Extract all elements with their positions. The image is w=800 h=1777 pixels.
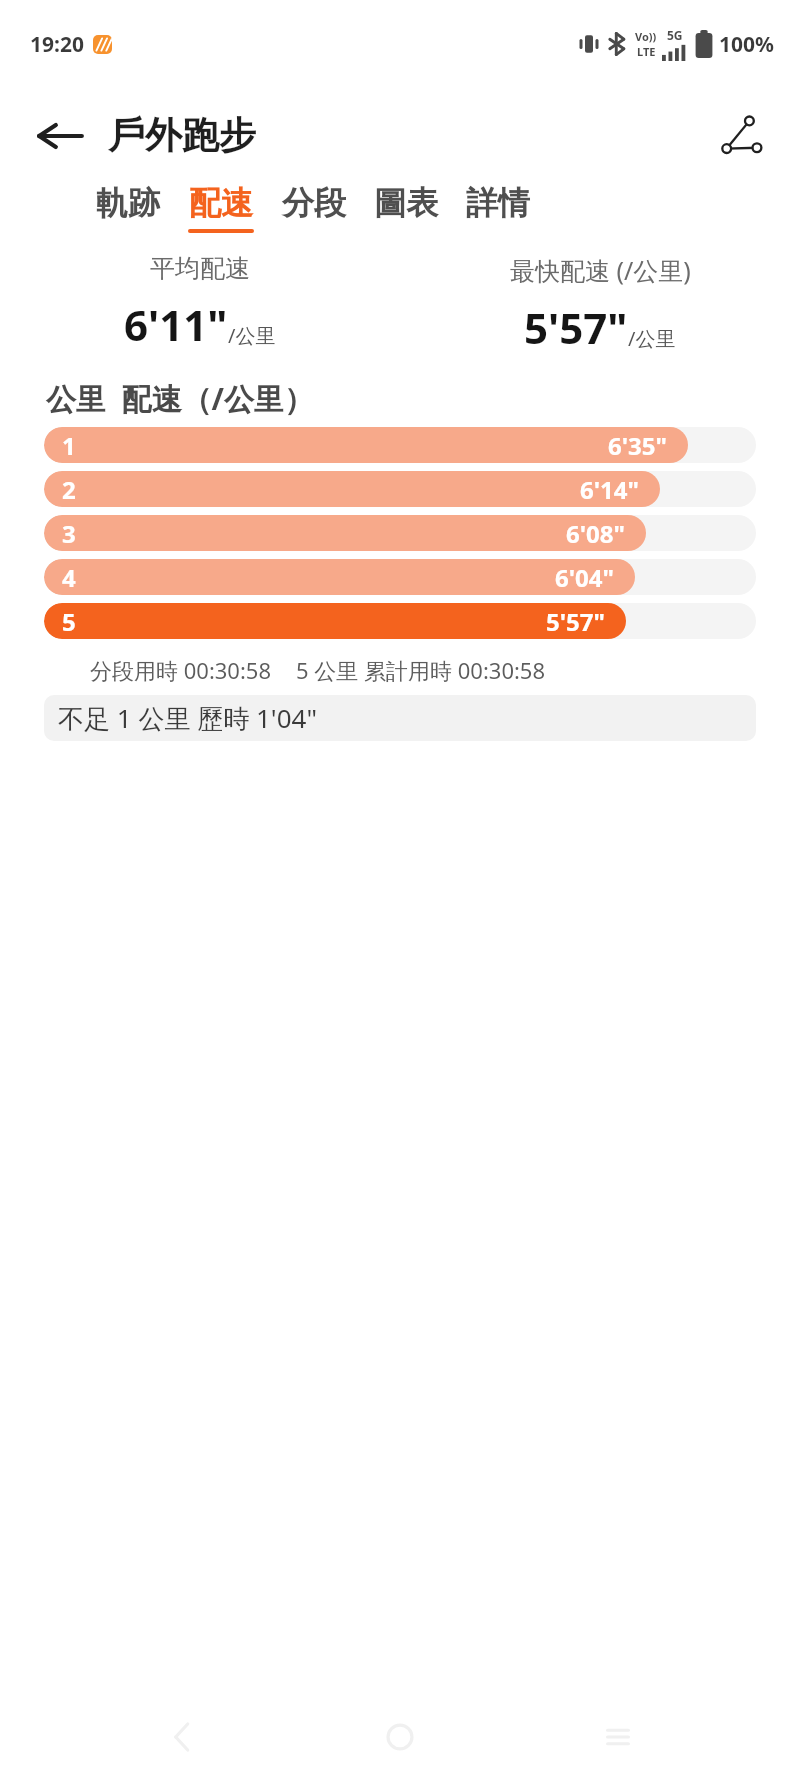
staticText: 詳情 xyxy=(466,183,530,223)
staticText: 100% xyxy=(719,30,774,59)
staticText: 5'57" xyxy=(524,299,628,356)
staticText: 1 xyxy=(62,429,76,462)
staticText: 最快配速 (/公里) xyxy=(510,253,691,287)
staticText: 不足 1 公里 歷時 1'04" xyxy=(58,700,317,736)
staticText: 6'35" xyxy=(608,429,668,462)
staticText: 戶外跑步 xyxy=(108,112,256,159)
button[interactable]: 配速 xyxy=(188,183,254,233)
button[interactable]: 5 xyxy=(44,603,756,639)
button[interactable]: 軌跡 xyxy=(96,183,160,233)
staticText: 分段 xyxy=(282,183,346,223)
staticText: 公里 配速（/公里） xyxy=(46,378,315,419)
button[interactable]: 3 xyxy=(44,515,756,551)
staticText: 6'14" xyxy=(580,473,640,506)
button[interactable]: Share xyxy=(710,105,772,167)
staticText: 6'11" xyxy=(124,296,228,353)
staticText: 5 公里 累計用時 00:30:58 xyxy=(296,655,546,685)
staticText: 分段用時 00:30:58 xyxy=(90,655,272,685)
staticText: 19:20 xyxy=(30,30,84,59)
button[interactable]: Back xyxy=(34,110,86,162)
button[interactable]: 4 xyxy=(44,559,756,595)
button[interactable]: 2 xyxy=(44,471,756,507)
staticText: Vo)) xyxy=(635,29,657,44)
staticText: /公里 xyxy=(228,322,276,349)
staticText: 軌跡 xyxy=(96,183,160,223)
staticText: LTE xyxy=(637,44,656,59)
staticText: 配速 xyxy=(189,183,253,223)
button[interactable]: 不足 1 公里 歷時 1'04" xyxy=(44,695,756,741)
staticText: 3 xyxy=(62,517,76,550)
staticText: 5G xyxy=(667,27,683,43)
button[interactable]: 圖表 xyxy=(374,183,438,233)
staticText: 4 xyxy=(62,561,76,594)
button[interactable]: 1 xyxy=(44,427,756,463)
staticText: 圖表 xyxy=(374,183,438,223)
staticText: 5 xyxy=(62,605,76,638)
staticText: 平均配速 xyxy=(150,253,250,284)
staticText: 5'57" xyxy=(546,605,606,638)
staticText: 6'04" xyxy=(555,561,615,594)
staticText: 2 xyxy=(62,473,76,506)
button[interactable]: 詳情 xyxy=(466,183,530,233)
button[interactable]: Home xyxy=(365,1702,435,1772)
button[interactable]: 分段 xyxy=(282,183,346,233)
staticText: 6'08" xyxy=(566,517,626,550)
staticText: /公里 xyxy=(628,325,676,352)
